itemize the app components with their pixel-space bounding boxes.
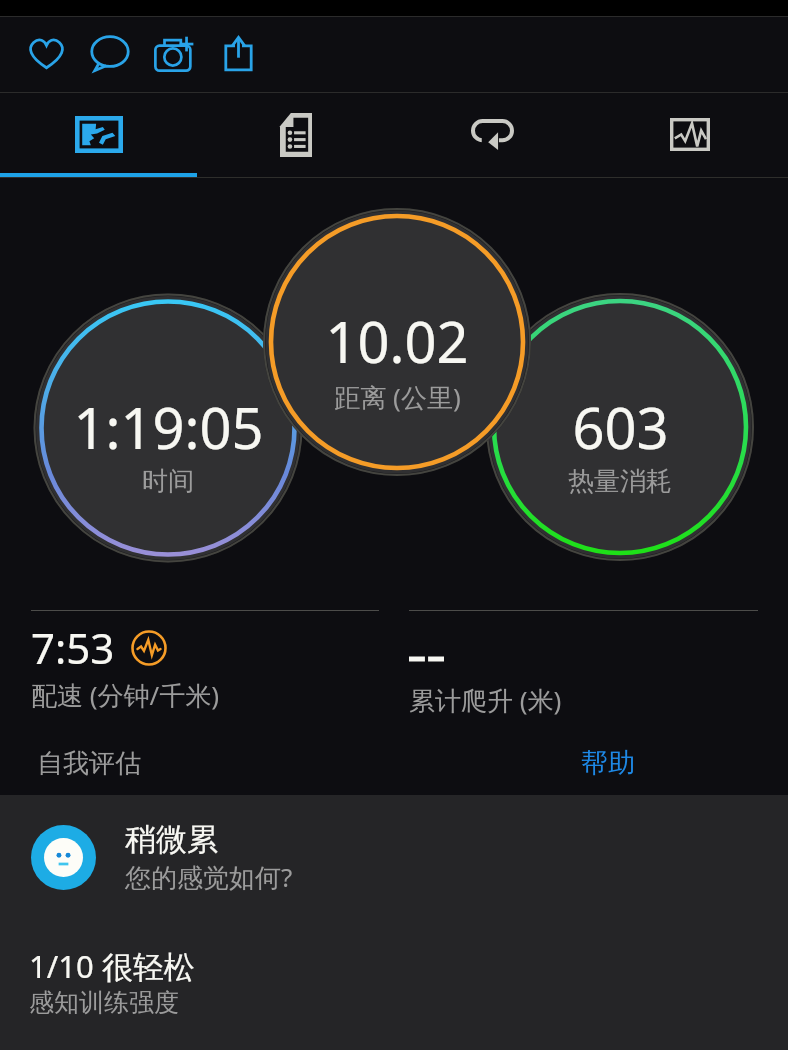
staticText: 7:53 xyxy=(31,619,115,676)
staticText: 配速 (分钟/千米) xyxy=(31,677,220,713)
button[interactable]: Laps xyxy=(394,93,591,176)
staticText: 时间 xyxy=(142,465,194,498)
staticText: 1/10 很轻松 xyxy=(29,945,195,987)
button[interactable]: 7:53 xyxy=(31,610,379,713)
button[interactable]: Like xyxy=(14,21,78,85)
button[interactable]: 稍微累 xyxy=(0,810,788,905)
button[interactable]: 帮助 xyxy=(562,735,654,791)
button[interactable]: Map xyxy=(0,93,197,176)
button[interactable]: 1/10 很轻松 xyxy=(29,945,195,1018)
button[interactable]: Share xyxy=(206,21,270,85)
button[interactable]: 1:19:05 xyxy=(38,299,298,559)
staticText: 稍微累 xyxy=(125,820,218,859)
button[interactable]: 10.02 xyxy=(268,213,526,471)
staticText: 热量消耗 xyxy=(568,465,672,498)
button[interactable]: 累计爬升 (米) xyxy=(409,610,758,718)
staticText: 感知训练强度 xyxy=(29,987,179,1018)
staticText: 10.02 xyxy=(325,303,469,379)
staticText: 1:19:05 xyxy=(73,389,264,465)
staticText: 您的感觉如何? xyxy=(125,859,293,895)
button[interactable]: Comment xyxy=(78,21,142,85)
button[interactable]: Add photo xyxy=(142,21,206,85)
staticText: 累计爬升 (米) xyxy=(409,682,562,718)
staticText: 距离 (公里) xyxy=(334,379,461,415)
staticText: 帮助 xyxy=(581,746,635,780)
button[interactable]: 自我评估 xyxy=(16,735,196,791)
staticText: 自我评估 xyxy=(37,747,141,780)
staticText: 603 xyxy=(572,389,669,465)
button[interactable]: Details xyxy=(197,93,394,176)
button[interactable]: 603 xyxy=(491,299,749,557)
button[interactable]: Chart xyxy=(591,93,788,176)
